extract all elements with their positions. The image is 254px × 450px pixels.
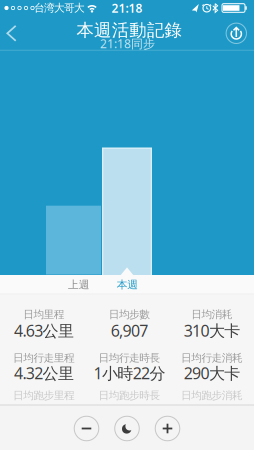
button[interactable]: Decrease (74, 416, 99, 441)
button[interactable]: 上週 (54, 275, 104, 294)
button[interactable]: Increase (155, 416, 180, 441)
staticText: 日均行走里程 (13, 351, 75, 364)
staticText: 310大卡 (184, 320, 240, 341)
button[interactable]: Sleep mode (114, 416, 139, 441)
staticText: 6,907 (111, 320, 148, 341)
staticText: 本週活動記錄 (76, 20, 181, 41)
staticText: 日均里程 (23, 308, 65, 321)
staticText: 21:18 (111, 0, 142, 16)
button[interactable]: 本週 (102, 275, 152, 294)
button[interactable]: Back (0, 20, 22, 47)
staticText: 4.32公里 (14, 362, 74, 384)
button[interactable]: Sync (223, 20, 249, 46)
staticText: 290大卡 (184, 362, 240, 384)
staticText: 日均跑步里程 (13, 389, 75, 402)
staticText: 1小時22分 (93, 362, 165, 384)
staticText: 日均行走時長 (98, 351, 160, 364)
staticText: 日均跑步消耗 (181, 389, 243, 402)
staticText: 日均行走消耗 (181, 351, 243, 364)
staticText: 台湾大哥大 (34, 1, 85, 14)
staticText: 4.63公里 (14, 320, 74, 341)
staticText: 日均步數 (109, 308, 150, 321)
staticText: 日均消耗 (191, 308, 233, 321)
staticText: 本週 (117, 278, 138, 291)
staticText: 上週 (68, 278, 90, 291)
staticText: 日均跑步時長 (98, 389, 160, 402)
staticText: 21:18同步 (100, 35, 155, 51)
